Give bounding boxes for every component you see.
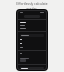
button[interactable] <box>20 67 44 69</box>
button[interactable] <box>20 34 44 37</box>
button[interactable] <box>18 14 46 19</box>
staticText: Effortlessly calculate <box>16 2 48 6</box>
staticText: grades. <box>26 7 38 11</box>
button[interactable]: Add <box>20 59 26 62</box>
